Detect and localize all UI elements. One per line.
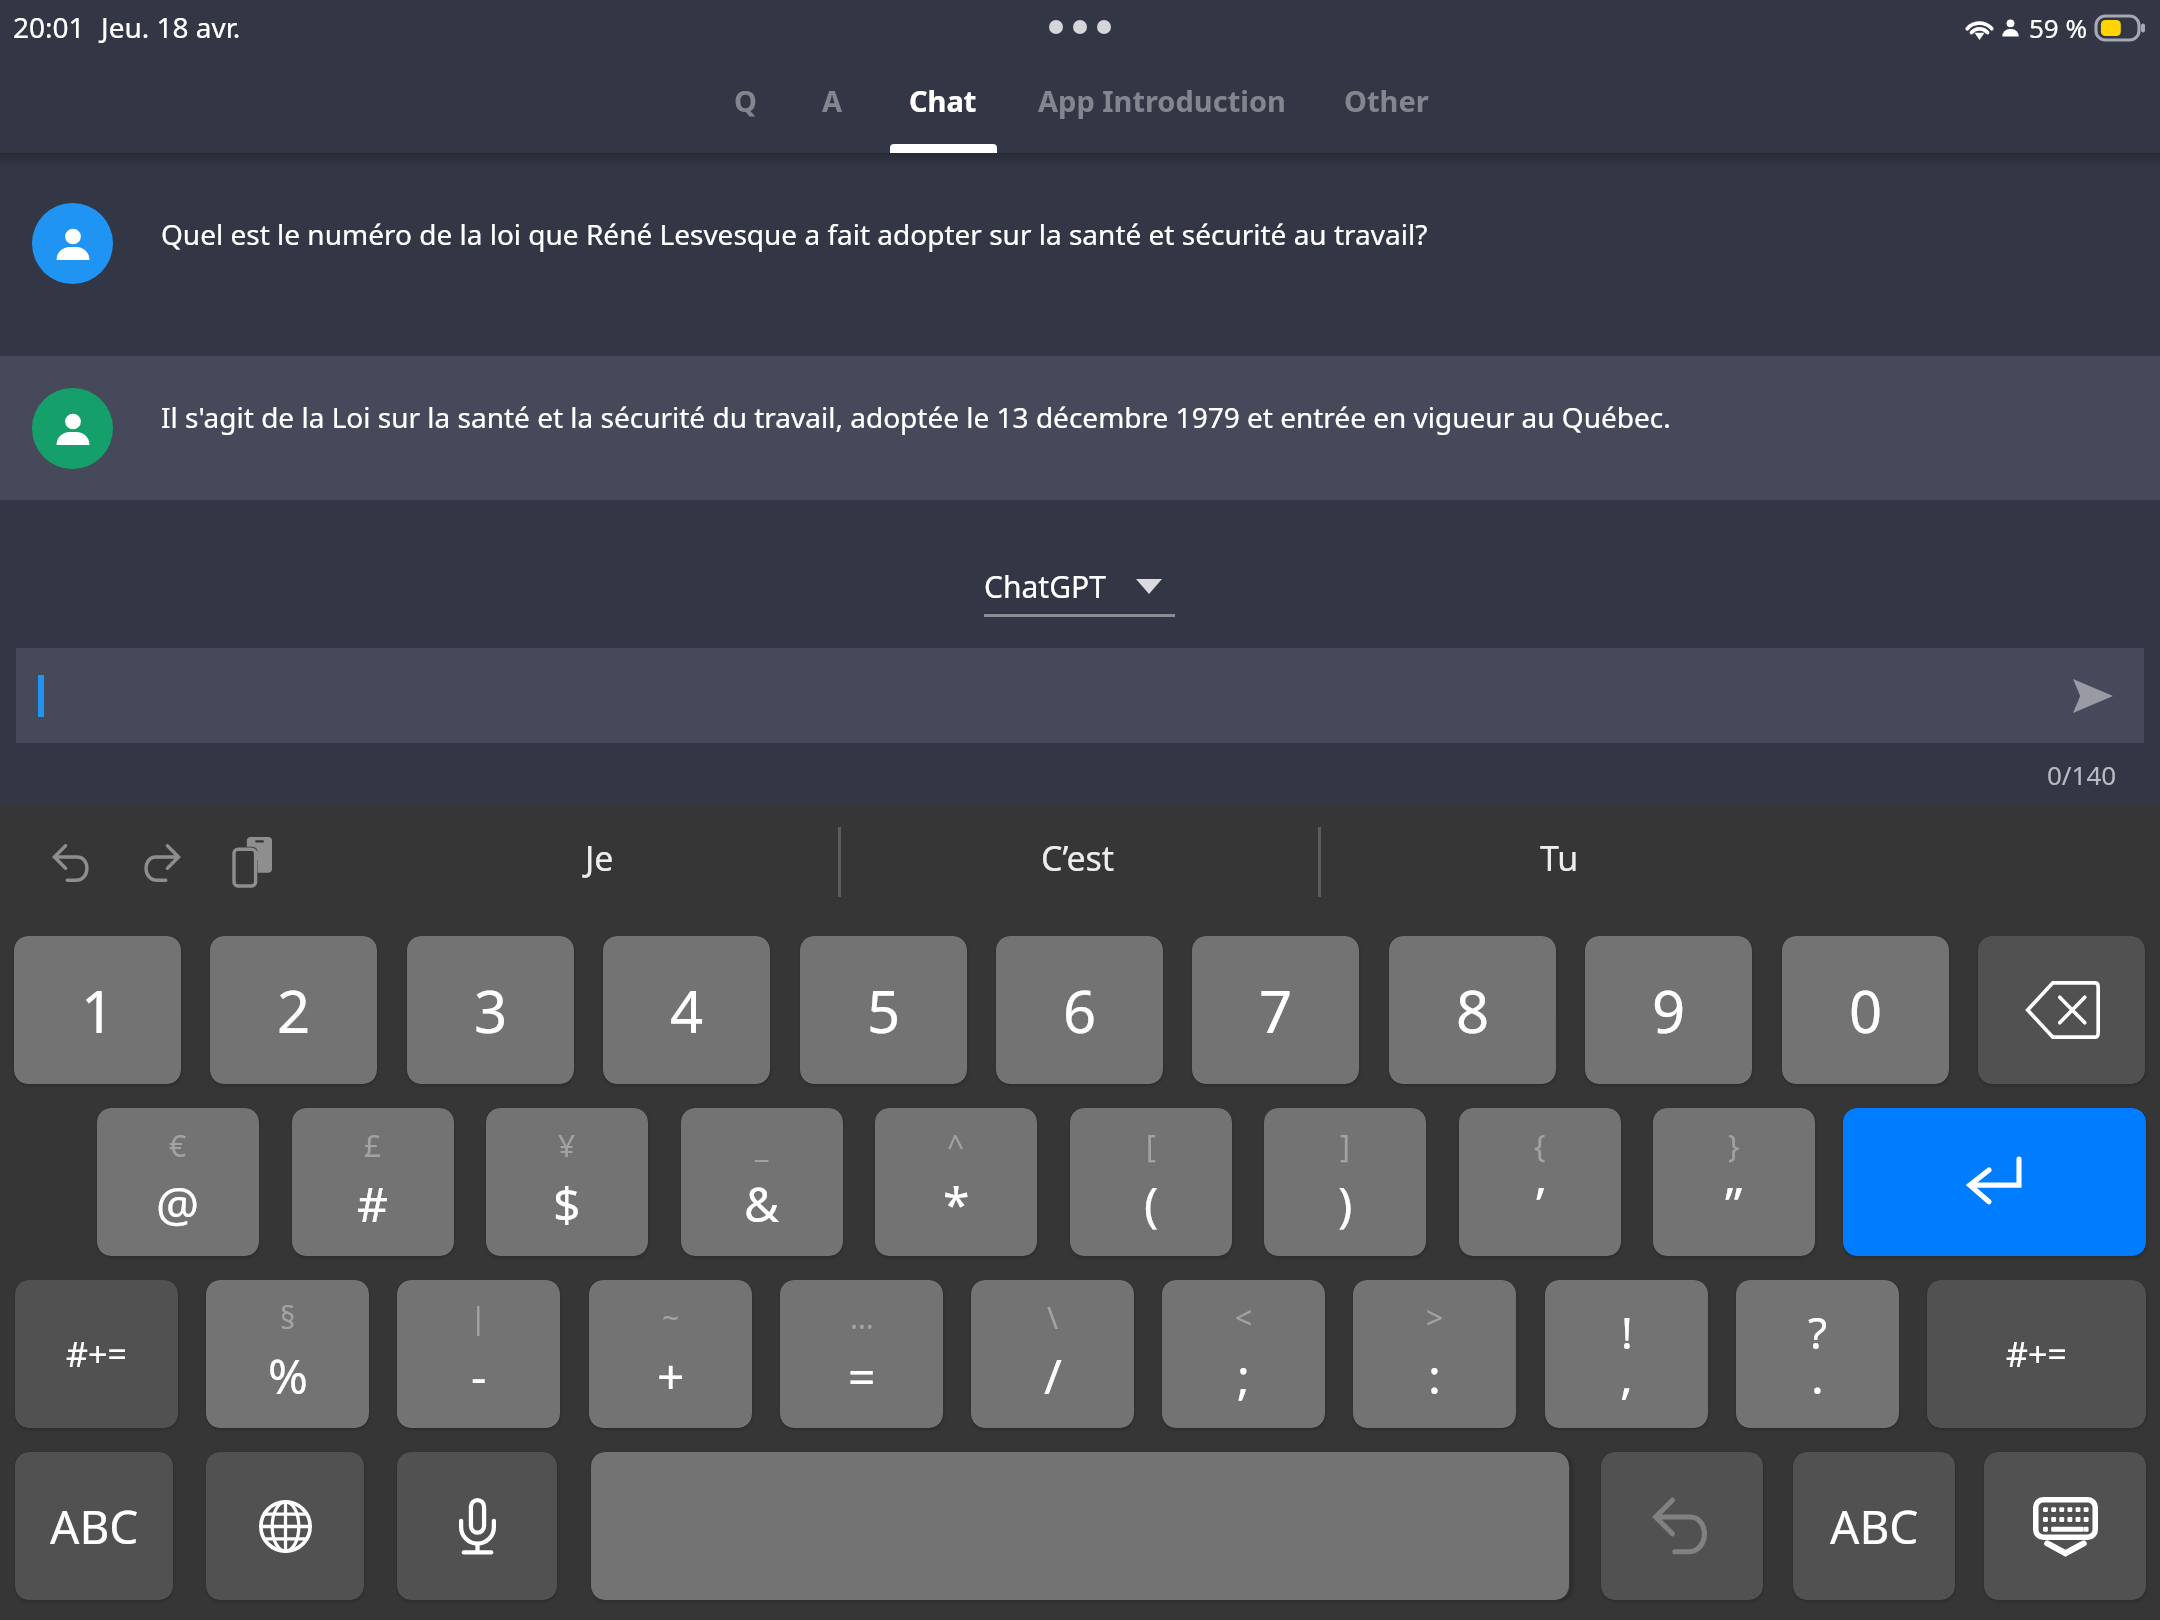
staticText: \ bbox=[1047, 1297, 1059, 1338]
staticText: Quel est le numéro de la loi que Réné Le… bbox=[161, 215, 1428, 253]
button[interactable]: Q bbox=[702, 54, 789, 153]
button[interactable]: { bbox=[1459, 1108, 1621, 1256]
button[interactable]: 8 bbox=[1389, 936, 1556, 1084]
button[interactable]: Backspace bbox=[1978, 936, 2145, 1084]
button[interactable]: A bbox=[789, 54, 876, 153]
button[interactable]: C’est bbox=[838, 804, 1318, 920]
button[interactable]: ChatGPT bbox=[984, 566, 1176, 607]
staticText: Chat bbox=[909, 81, 977, 120]
staticText: ; bbox=[1237, 1343, 1250, 1408]
staticText: 2 bbox=[277, 971, 311, 1050]
staticText: ABC bbox=[1830, 1495, 1919, 1558]
staticText: * bbox=[943, 1171, 970, 1236]
button[interactable]: Undo bbox=[52, 843, 92, 883]
staticText: A bbox=[822, 81, 843, 120]
button[interactable]: 2 bbox=[210, 936, 377, 1084]
button[interactable]: Send bbox=[16, 648, 2144, 743]
button[interactable]: ? bbox=[1736, 1280, 1899, 1428]
staticText: ^ bbox=[947, 1125, 965, 1166]
button[interactable]: Tu bbox=[1318, 804, 1800, 920]
button[interactable]: | bbox=[397, 1280, 560, 1428]
button[interactable]: Return bbox=[1843, 1108, 2146, 1256]
staticText: 8 bbox=[1456, 971, 1490, 1050]
staticText: 4 bbox=[670, 971, 704, 1050]
button[interactable]: } bbox=[1653, 1108, 1815, 1256]
staticText: , bbox=[1620, 1343, 1633, 1408]
button[interactable]: Paste bbox=[232, 837, 272, 888]
button[interactable]: 5 bbox=[800, 936, 967, 1084]
staticText: € bbox=[169, 1125, 187, 1166]
button[interactable]: \ bbox=[971, 1280, 1134, 1428]
button[interactable]: 6 bbox=[996, 936, 1163, 1084]
staticText: 20:01 bbox=[13, 8, 85, 46]
button[interactable]: Voice input bbox=[397, 1452, 557, 1600]
button[interactable]: < bbox=[1162, 1280, 1325, 1428]
button[interactable]: 9 bbox=[1585, 936, 1752, 1084]
staticText: | bbox=[470, 1297, 487, 1338]
button[interactable]: ^ bbox=[875, 1108, 1037, 1256]
staticText: ? bbox=[1808, 1302, 1828, 1362]
button[interactable]: #+= bbox=[1927, 1280, 2146, 1428]
button[interactable]: ] bbox=[1264, 1108, 1426, 1256]
button[interactable]: € bbox=[97, 1108, 259, 1256]
button[interactable]: Send bbox=[2073, 679, 2113, 713]
staticText: Jeu. 18 avr. bbox=[101, 8, 241, 46]
staticText: Q bbox=[734, 81, 757, 120]
button[interactable]: … bbox=[780, 1280, 943, 1428]
button[interactable]: ABC bbox=[1793, 1452, 1955, 1600]
button[interactable]: Change keyboard bbox=[206, 1452, 364, 1600]
button[interactable]: Je bbox=[360, 804, 838, 920]
staticText: - bbox=[471, 1343, 487, 1408]
button[interactable]: 4 bbox=[603, 936, 770, 1084]
staticText: . bbox=[1811, 1343, 1824, 1408]
staticText: #+= bbox=[2006, 1331, 2067, 1377]
staticText: C’est bbox=[1041, 835, 1115, 881]
staticText: ChatGPT bbox=[984, 566, 1106, 607]
button[interactable]: Other bbox=[1314, 54, 1459, 153]
staticText: $ bbox=[553, 1171, 581, 1236]
staticText: ! bbox=[1621, 1302, 1633, 1362]
staticText: Tu bbox=[1540, 835, 1579, 881]
staticText: % bbox=[268, 1343, 308, 1408]
staticText: 3 bbox=[474, 971, 508, 1050]
button[interactable]: ! bbox=[1545, 1280, 1708, 1428]
staticText: App Introduction bbox=[1038, 81, 1286, 120]
staticText: 5 bbox=[867, 971, 901, 1050]
button[interactable]: Quel est le numéro de la loi que Réné Le… bbox=[0, 153, 2160, 356]
staticText: [ bbox=[1146, 1125, 1156, 1166]
staticText: ] bbox=[1340, 1125, 1350, 1166]
button[interactable]: 3 bbox=[407, 936, 574, 1084]
button[interactable]: Redo bbox=[141, 843, 181, 883]
staticText: & bbox=[744, 1171, 780, 1236]
staticText: ” bbox=[1725, 1171, 1743, 1236]
staticText: ABC bbox=[50, 1495, 139, 1558]
staticText: = bbox=[848, 1343, 876, 1408]
staticText: @ bbox=[156, 1171, 200, 1236]
staticText: 9 bbox=[1652, 971, 1686, 1050]
button[interactable]: ¥ bbox=[486, 1108, 648, 1256]
staticText: ( bbox=[1144, 1171, 1159, 1236]
button[interactable]: 7 bbox=[1192, 936, 1359, 1084]
button[interactable]: § bbox=[206, 1280, 369, 1428]
staticText: Il s'agit de la Loi sur la santé et la s… bbox=[161, 398, 1671, 436]
button[interactable]: 1 bbox=[14, 936, 181, 1084]
button[interactable]: Hide keyboard bbox=[1984, 1452, 2146, 1600]
button[interactable]: ~ bbox=[589, 1280, 752, 1428]
button[interactable]: ABC bbox=[15, 1452, 173, 1600]
button[interactable]: > bbox=[1353, 1280, 1516, 1428]
button[interactable]: App Introduction bbox=[1010, 54, 1314, 153]
staticText: ~ bbox=[662, 1297, 680, 1338]
button[interactable]: #+= bbox=[15, 1280, 178, 1428]
button[interactable]: Undo bbox=[1601, 1452, 1763, 1600]
button[interactable]: [ bbox=[1070, 1108, 1232, 1256]
button[interactable]: Il s'agit de la Loi sur la santé et la s… bbox=[0, 356, 2160, 500]
staticText: 0 bbox=[1849, 971, 1883, 1050]
staticText: Je bbox=[585, 835, 614, 881]
button[interactable]: _ bbox=[681, 1108, 843, 1256]
button[interactable]: 0 bbox=[1782, 936, 1949, 1084]
staticText: : bbox=[1428, 1343, 1441, 1408]
staticText: / bbox=[1044, 1343, 1062, 1408]
button[interactable]: £ bbox=[292, 1108, 454, 1256]
button[interactable]: Chat bbox=[876, 54, 1010, 153]
